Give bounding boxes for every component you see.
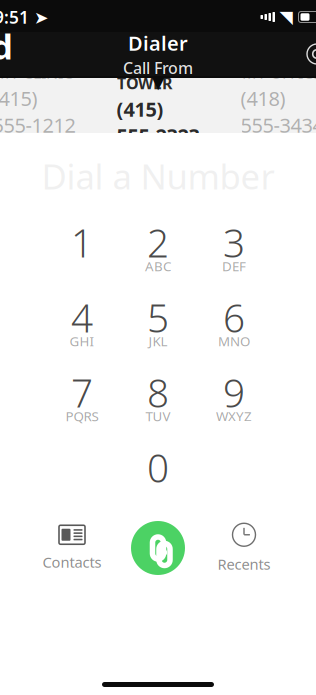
button[interactable]: Contacts — [29, 518, 115, 578]
staticText: Dialer — [128, 30, 188, 56]
button[interactable]: 5 — [120, 294, 196, 354]
staticText: MNO — [218, 332, 250, 350]
staticText: (418) 555-3434 — [240, 85, 316, 138]
staticText: JKL — [148, 332, 167, 350]
staticText: AVENGERS TOWER — [117, 51, 199, 94]
staticText: Call From — [123, 57, 193, 78]
button[interactable]: 6 — [196, 294, 272, 354]
staticText: ABC — [145, 257, 171, 275]
staticText: WXYZ — [216, 407, 252, 425]
button[interactable]: 2 — [120, 219, 196, 279]
staticText: d — [0, 23, 13, 69]
staticText: (415) 555-1212 — [0, 85, 75, 138]
button[interactable]: Recents — [201, 518, 287, 578]
button[interactable]: 7 — [44, 369, 120, 429]
button[interactable]: MY CLINIC — [0, 78, 96, 133]
button[interactable]: 0 — [120, 444, 196, 504]
staticText: Recents — [217, 554, 270, 574]
staticText: 6 — [223, 292, 245, 343]
staticText: ◥ — [279, 7, 292, 27]
button[interactable]: 9 — [196, 369, 272, 429]
staticText: TUV — [145, 407, 170, 425]
button[interactable]: Dialpad — [0, 32, 26, 76]
staticText: 5 — [147, 292, 169, 343]
button[interactable]: Settings — [290, 32, 316, 76]
staticText: 1 — [71, 217, 93, 268]
staticText: Dial a Number — [41, 153, 274, 199]
staticText: 8 — [147, 367, 169, 418]
staticText — [80, 257, 83, 275]
button[interactable]: 8 — [120, 369, 196, 429]
staticText: 0 — [147, 442, 169, 493]
staticText: 9:51 ➤ — [0, 5, 49, 28]
button[interactable]: MY OFFICE — [220, 78, 316, 133]
staticText: 3 — [223, 217, 245, 268]
staticText: 7 — [71, 367, 93, 418]
button[interactable]: Call — [115, 518, 201, 578]
staticText: ▼ — [151, 71, 165, 92]
button[interactable]: AVENGERS TOWER — [96, 78, 220, 133]
staticText: (415) 555-2323 — [116, 96, 199, 149]
button[interactable]: 3 — [196, 219, 272, 279]
staticText: 2 — [147, 217, 169, 268]
button[interactable]: 4 — [44, 294, 120, 354]
staticText: PQRS — [65, 407, 98, 425]
staticText: MY OFFICE — [242, 62, 316, 83]
staticText: MY CLINIC — [0, 62, 73, 83]
staticText: DEF — [222, 257, 246, 275]
button[interactable]: 1 — [44, 219, 120, 279]
staticText: GHI — [69, 332, 94, 350]
staticText: 9 — [223, 367, 245, 418]
staticText: Contacts — [42, 552, 101, 572]
staticText — [156, 482, 159, 500]
staticText: 4 — [71, 292, 93, 343]
